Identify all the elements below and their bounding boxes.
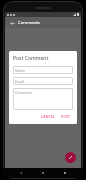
button[interactable]: Comment <box>13 88 73 110</box>
staticText: Post Comment <box>13 55 49 62</box>
staticText: Comments <box>18 20 40 26</box>
button[interactable]: Name <box>13 66 73 74</box>
button[interactable]: POST <box>59 113 73 120</box>
staticText: POST <box>61 114 71 119</box>
staticText: Email <box>15 79 25 83</box>
button[interactable]: Back <box>8 19 16 27</box>
button[interactable]: Home <box>39 169 47 177</box>
staticText: Comment <box>15 90 32 95</box>
button[interactable]: Write comment <box>65 152 76 163</box>
button[interactable]: Recents <box>61 169 69 177</box>
button[interactable]: Back <box>17 169 25 177</box>
staticText: Name <box>15 68 26 72</box>
button[interactable]: CANCEL <box>39 113 57 120</box>
button[interactable]: Email <box>13 77 73 85</box>
staticText: CANCEL <box>41 114 55 119</box>
